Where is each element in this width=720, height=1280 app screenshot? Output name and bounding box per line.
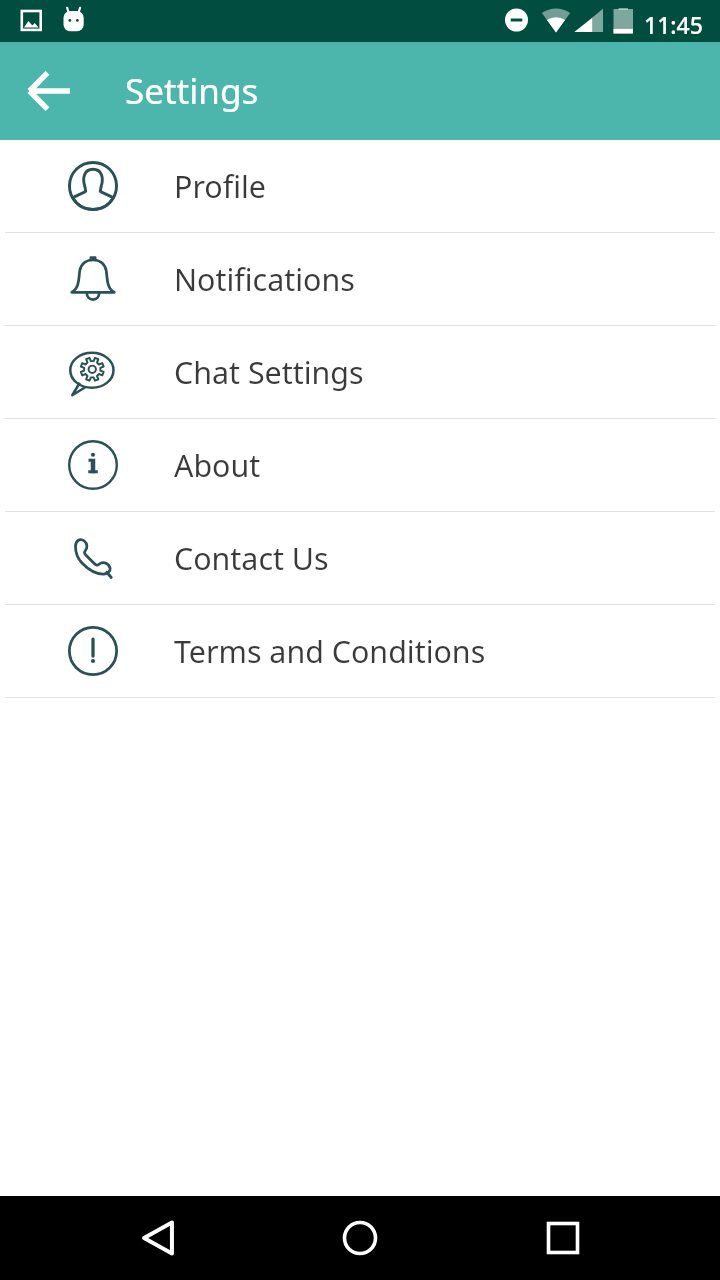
button[interactable]: Back xyxy=(118,1196,198,1280)
staticText: Contact Us xyxy=(174,538,329,579)
staticText: Notifications xyxy=(174,259,355,300)
staticText: Settings xyxy=(125,67,259,115)
staticText: About xyxy=(174,445,261,486)
staticText: Chat Settings xyxy=(174,352,364,393)
button[interactable]: Contact Us xyxy=(0,512,720,605)
button[interactable]: Notifications xyxy=(0,233,720,326)
button[interactable]: Back xyxy=(25,66,75,116)
button[interactable]: Profile xyxy=(0,140,720,233)
button[interactable]: Chat Settings xyxy=(0,326,720,419)
staticText: Terms and Conditions xyxy=(174,631,486,672)
button[interactable]: Terms and Conditions xyxy=(0,605,720,698)
staticText: Profile xyxy=(174,166,266,207)
button[interactable]: Recent apps xyxy=(523,1196,603,1280)
button[interactable]: Home xyxy=(320,1196,400,1280)
button[interactable]: About xyxy=(0,419,720,512)
staticText: 11:45 xyxy=(644,9,703,40)
